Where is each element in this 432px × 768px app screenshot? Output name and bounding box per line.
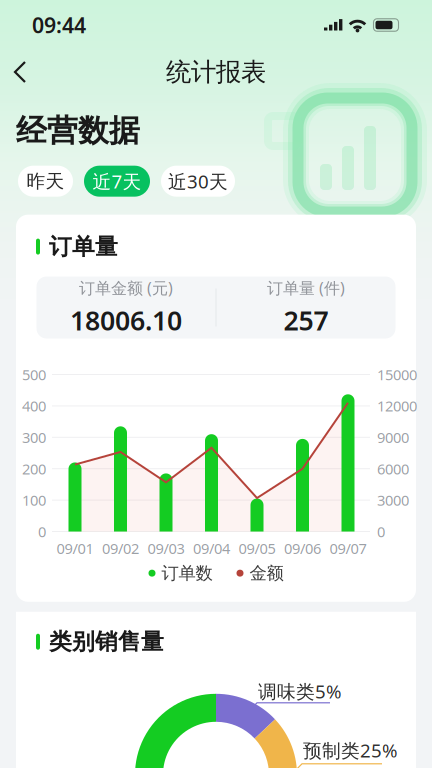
staticText: 近30天 xyxy=(168,169,228,194)
staticText: 9000 xyxy=(377,428,409,447)
staticText: 0 xyxy=(38,522,46,541)
staticText: 订单数 xyxy=(161,562,212,584)
button[interactable]: 昨天 xyxy=(18,166,73,197)
staticText: 100 xyxy=(22,490,46,510)
staticText: 09/05 xyxy=(238,538,275,558)
staticText: 0 xyxy=(377,522,385,541)
staticText: 3000 xyxy=(377,490,409,510)
staticText: 09/07 xyxy=(329,538,366,558)
button[interactable]: 近30天 xyxy=(161,166,235,197)
staticText: 统计报表 xyxy=(166,56,266,87)
staticText: 09/06 xyxy=(284,538,321,558)
staticText: 300 xyxy=(22,428,46,447)
staticText: 200 xyxy=(22,459,46,478)
button[interactable]: Back xyxy=(0,50,40,94)
staticText: 18006.10 xyxy=(70,302,182,338)
staticText: 09:44 xyxy=(32,11,86,39)
staticText: 09/04 xyxy=(193,538,230,558)
staticText: 12000 xyxy=(377,396,417,416)
staticText: 经营数据 xyxy=(16,112,140,150)
staticText: 订单量 xyxy=(49,233,118,260)
staticText: 6000 xyxy=(377,459,409,478)
staticText: 金额 xyxy=(249,562,283,584)
staticText: 近7天 xyxy=(92,169,141,194)
staticText: 15000 xyxy=(377,365,417,384)
staticText: 订单量 (件) xyxy=(267,277,345,298)
staticText: 订单金额 (元) xyxy=(79,277,173,298)
staticText: 500 xyxy=(22,365,46,384)
staticText: 昨天 xyxy=(26,170,64,193)
staticText: 调味类5% xyxy=(258,679,342,704)
button[interactable]: 近7天 xyxy=(84,166,150,197)
staticText: 09/02 xyxy=(102,538,139,558)
staticText: 400 xyxy=(22,396,46,416)
staticText: 257 xyxy=(283,302,328,338)
staticText: 09/01 xyxy=(56,538,93,558)
staticText: 预制类25% xyxy=(303,738,398,763)
staticText: 类别销售量 xyxy=(49,628,164,656)
staticText: 09/03 xyxy=(147,538,184,558)
